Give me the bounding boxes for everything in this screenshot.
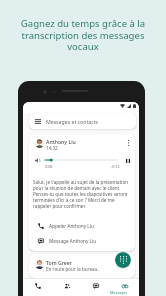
button[interactable]: Messages vocaux [110, 279, 139, 296]
staticText: 14:32 [46, 145, 58, 151]
staticText: Appeler Anthony Liu [49, 223, 94, 229]
staticText: Messages et contacts [46, 118, 99, 125]
staticText: Salut, je t'appelle au sujet de la prése… [33, 179, 131, 209]
staticText: 0:00 [45, 164, 53, 169]
button[interactable]: Message Anthony Liu [38, 235, 133, 246]
staticText: Messages vocaux [110, 290, 139, 296]
staticText: Anthony Liu [46, 138, 76, 145]
staticText: -0:12 [111, 164, 120, 169]
button[interactable]: Messages et contacts [29, 113, 136, 129]
staticText: Tom Greer [46, 259, 72, 266]
staticText: Message Anthony Liu [49, 238, 97, 244]
button[interactable]: Clavier [115, 252, 131, 268]
button[interactable]: Messages [81, 279, 110, 296]
button[interactable]: Contacts [52, 279, 81, 296]
staticText: Gagnez du temps grâce à la transcription… [10, 17, 156, 53]
button[interactable]: Appeler Anthony Liu [38, 220, 133, 231]
button[interactable]: Appels [23, 279, 52, 296]
button[interactable]: Pause [123, 156, 132, 165]
button[interactable]: Tom Greer [29, 254, 135, 278]
button[interactable]: Plus d'options [125, 137, 132, 149]
staticText: En route pour le bureau. [46, 266, 99, 272]
